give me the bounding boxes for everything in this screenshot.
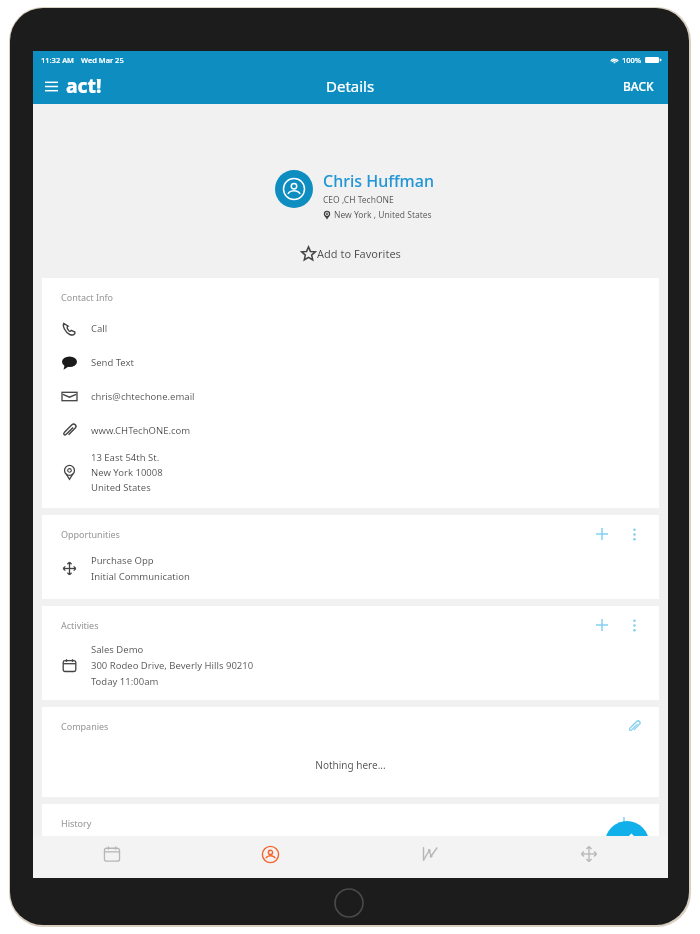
staticText: Contact Info [61, 291, 114, 303]
button[interactable]: Add Activities [591, 614, 613, 636]
button[interactable]: Link company [623, 715, 645, 737]
staticText: Companies [61, 720, 109, 732]
staticText: Sales Demo [91, 643, 144, 656]
staticText: History [61, 817, 92, 829]
staticText: Opportunities [61, 528, 120, 540]
button[interactable]: BACK [609, 70, 668, 102]
staticText: Details [326, 76, 375, 96]
button[interactable]: Call [42, 311, 659, 345]
button[interactable]: Sales Demo [42, 639, 659, 700]
button[interactable]: More options Opportunities [623, 523, 645, 545]
staticText: New York , United States [334, 209, 432, 221]
staticText: act! [66, 73, 102, 99]
staticText: Wed Mar 25 [81, 55, 124, 65]
button[interactable]: Send Text [42, 345, 659, 379]
staticText: Activities [61, 619, 99, 631]
staticText: 11:32 AM [41, 55, 74, 65]
button[interactable]: Add Opportunities [591, 523, 613, 545]
staticText: chris@chtechone.email [91, 390, 195, 403]
button[interactable]: www.CHTechONE.com [42, 413, 659, 447]
button[interactable]: Opportunities [509, 836, 668, 878]
staticText: Purchase Opp [91, 554, 154, 567]
button[interactable]: Add to Favorites [297, 244, 405, 263]
button[interactable]: Edit [605, 821, 649, 865]
staticText: New York 10008 [91, 466, 163, 479]
staticText: www.CHTechONE.com [91, 424, 191, 437]
staticText: BACK [623, 78, 654, 94]
staticText: Today 11:00am [91, 675, 159, 688]
button[interactable]: More options Activities [623, 614, 645, 636]
staticText: 300 Rodeo Drive, Beverly Hills 90210 [91, 659, 254, 672]
button[interactable]: Menu [41, 76, 62, 97]
staticText: CEO ,CH TechONE [323, 194, 394, 206]
staticText: Call [91, 322, 108, 335]
button[interactable]: Purchase Opp [42, 548, 659, 599]
staticText: United States [91, 481, 151, 494]
button[interactable]: Contacts [191, 836, 350, 878]
staticText: 13 East 54th St. [91, 451, 160, 464]
button[interactable]: 13 East 54th St. [42, 447, 659, 504]
staticText: Initial Communication [91, 570, 190, 583]
other: Home [334, 888, 364, 918]
staticText: Send Text [91, 356, 134, 369]
button[interactable]: Add History [613, 812, 635, 834]
staticText: Add to Favorites [317, 246, 401, 261]
staticText: 100% [622, 55, 642, 65]
staticText: Nothing here... [315, 758, 386, 772]
button[interactable]: chris@chtechone.email [42, 379, 659, 413]
button[interactable]: Chris Huffman [275, 170, 434, 221]
staticText: Chris Huffman [323, 170, 434, 192]
button[interactable]: Reports [350, 836, 509, 878]
button[interactable]: Calendar [33, 836, 191, 878]
